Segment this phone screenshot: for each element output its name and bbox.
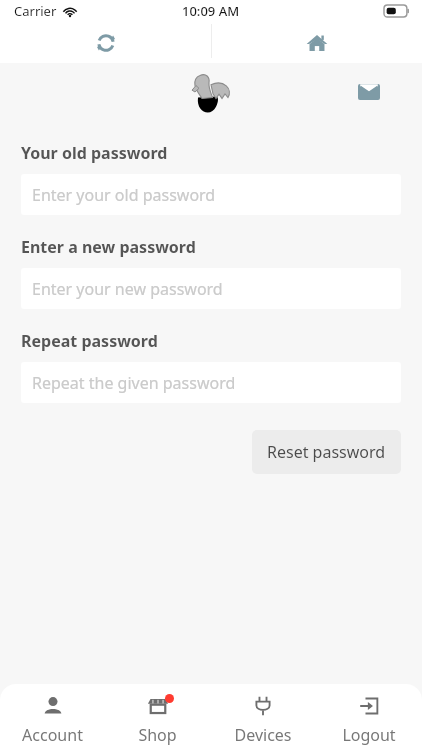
button[interactable]: Devices xyxy=(210,684,316,746)
button[interactable]: Logout xyxy=(316,684,422,746)
staticText: Shop xyxy=(138,724,177,746)
staticText: Logout xyxy=(342,724,396,746)
staticText: Account xyxy=(22,724,83,746)
staticText: Enter your new password xyxy=(32,278,223,300)
staticText: Reset password xyxy=(267,441,386,463)
staticText: Your old password xyxy=(21,142,168,164)
staticText: Enter your old password xyxy=(32,184,216,206)
button[interactable]: Shop xyxy=(105,684,210,746)
button[interactable]: Repeat the given password xyxy=(21,362,401,403)
staticText: Devices xyxy=(234,724,292,746)
button[interactable]: Messages xyxy=(354,77,384,107)
staticText: Repeat the given password xyxy=(32,372,236,394)
button[interactable]: Home xyxy=(211,22,422,63)
button[interactable]: Reset password xyxy=(252,430,401,474)
button[interactable]: Account xyxy=(0,684,105,746)
staticText: Repeat password xyxy=(21,330,158,352)
button[interactable]: Enter your new password xyxy=(21,268,401,309)
button[interactable]: Enter your old password xyxy=(21,174,401,215)
staticText: Enter a new password xyxy=(21,236,196,258)
staticText: 10:09 AM xyxy=(182,2,240,20)
button[interactable]: Refresh xyxy=(0,22,211,63)
staticText: Carrier xyxy=(14,2,57,20)
